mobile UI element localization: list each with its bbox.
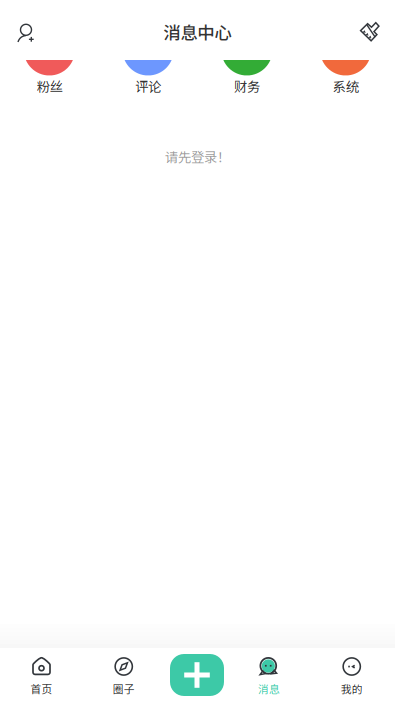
staticText: 首页 bbox=[30, 681, 52, 696]
button[interactable]: 圈子 bbox=[83, 648, 164, 702]
button[interactable]: 粉丝 bbox=[0, 60, 99, 96]
button[interactable]: Add friend bbox=[6, 12, 46, 52]
button[interactable]: 评论 bbox=[99, 60, 198, 96]
staticText: 消息 bbox=[258, 681, 280, 696]
button[interactable]: 消息 bbox=[229, 648, 308, 702]
staticText: 粉丝 bbox=[36, 76, 62, 96]
staticText: 财务 bbox=[234, 76, 260, 96]
staticText: 请先登录！ bbox=[165, 147, 230, 166]
staticText: 我的 bbox=[341, 681, 363, 696]
button[interactable]: 系统 bbox=[296, 60, 395, 96]
button[interactable]: 财务 bbox=[197, 60, 296, 96]
staticText: 系统 bbox=[333, 76, 359, 96]
button[interactable]: 首页 bbox=[0, 648, 83, 702]
staticText: 评论 bbox=[135, 76, 161, 96]
staticText: 消息中心 bbox=[163, 19, 231, 45]
button[interactable]: Create bbox=[164, 648, 229, 702]
staticText: 圈子 bbox=[113, 681, 135, 696]
button[interactable]: 我的 bbox=[308, 648, 395, 702]
button[interactable]: Clear messages bbox=[350, 12, 390, 52]
